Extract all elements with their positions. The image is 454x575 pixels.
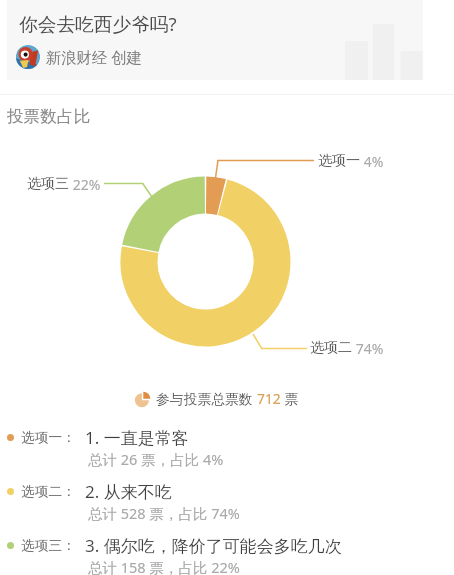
staticText: 22% xyxy=(69,175,101,194)
staticText: 4% xyxy=(360,152,384,171)
button[interactable]: 选项三 xyxy=(0,534,454,575)
staticText: 票 xyxy=(281,389,299,408)
staticText: 新浪财经 创建 xyxy=(46,47,142,68)
staticText: 总计 158 票，占比 22% xyxy=(88,557,240,575)
staticText: 选项三 xyxy=(27,175,69,193)
staticText: 你会去吃西少爷吗? xyxy=(19,11,177,37)
staticText: 选项一 xyxy=(21,429,63,446)
staticText: 参与投票总票数 xyxy=(156,389,257,408)
staticText: 74% xyxy=(352,339,384,358)
staticText: 1. 一直是常客 xyxy=(85,426,189,449)
staticText: 总计 528 票，占比 74% xyxy=(88,503,240,523)
staticText: 选项二 xyxy=(310,339,352,357)
staticText: ： xyxy=(62,429,76,446)
staticText: 选项一 xyxy=(318,152,360,170)
staticText: 选项三 xyxy=(21,537,63,554)
staticText: 选项二 xyxy=(21,483,63,500)
button[interactable]: 选项一 xyxy=(0,426,454,469)
staticText: ： xyxy=(62,483,76,500)
staticText: 投票数占比 xyxy=(7,106,90,127)
staticText: 总计 26 票，占比 4% xyxy=(88,449,224,469)
staticText: 712 xyxy=(257,389,281,408)
staticText: 2. 从来不吃 xyxy=(85,480,172,503)
staticText: 3. 偶尔吃，降价了可能会多吃几次 xyxy=(85,534,342,557)
button[interactable]: 选项二 xyxy=(0,480,454,523)
staticText: ： xyxy=(62,537,76,554)
